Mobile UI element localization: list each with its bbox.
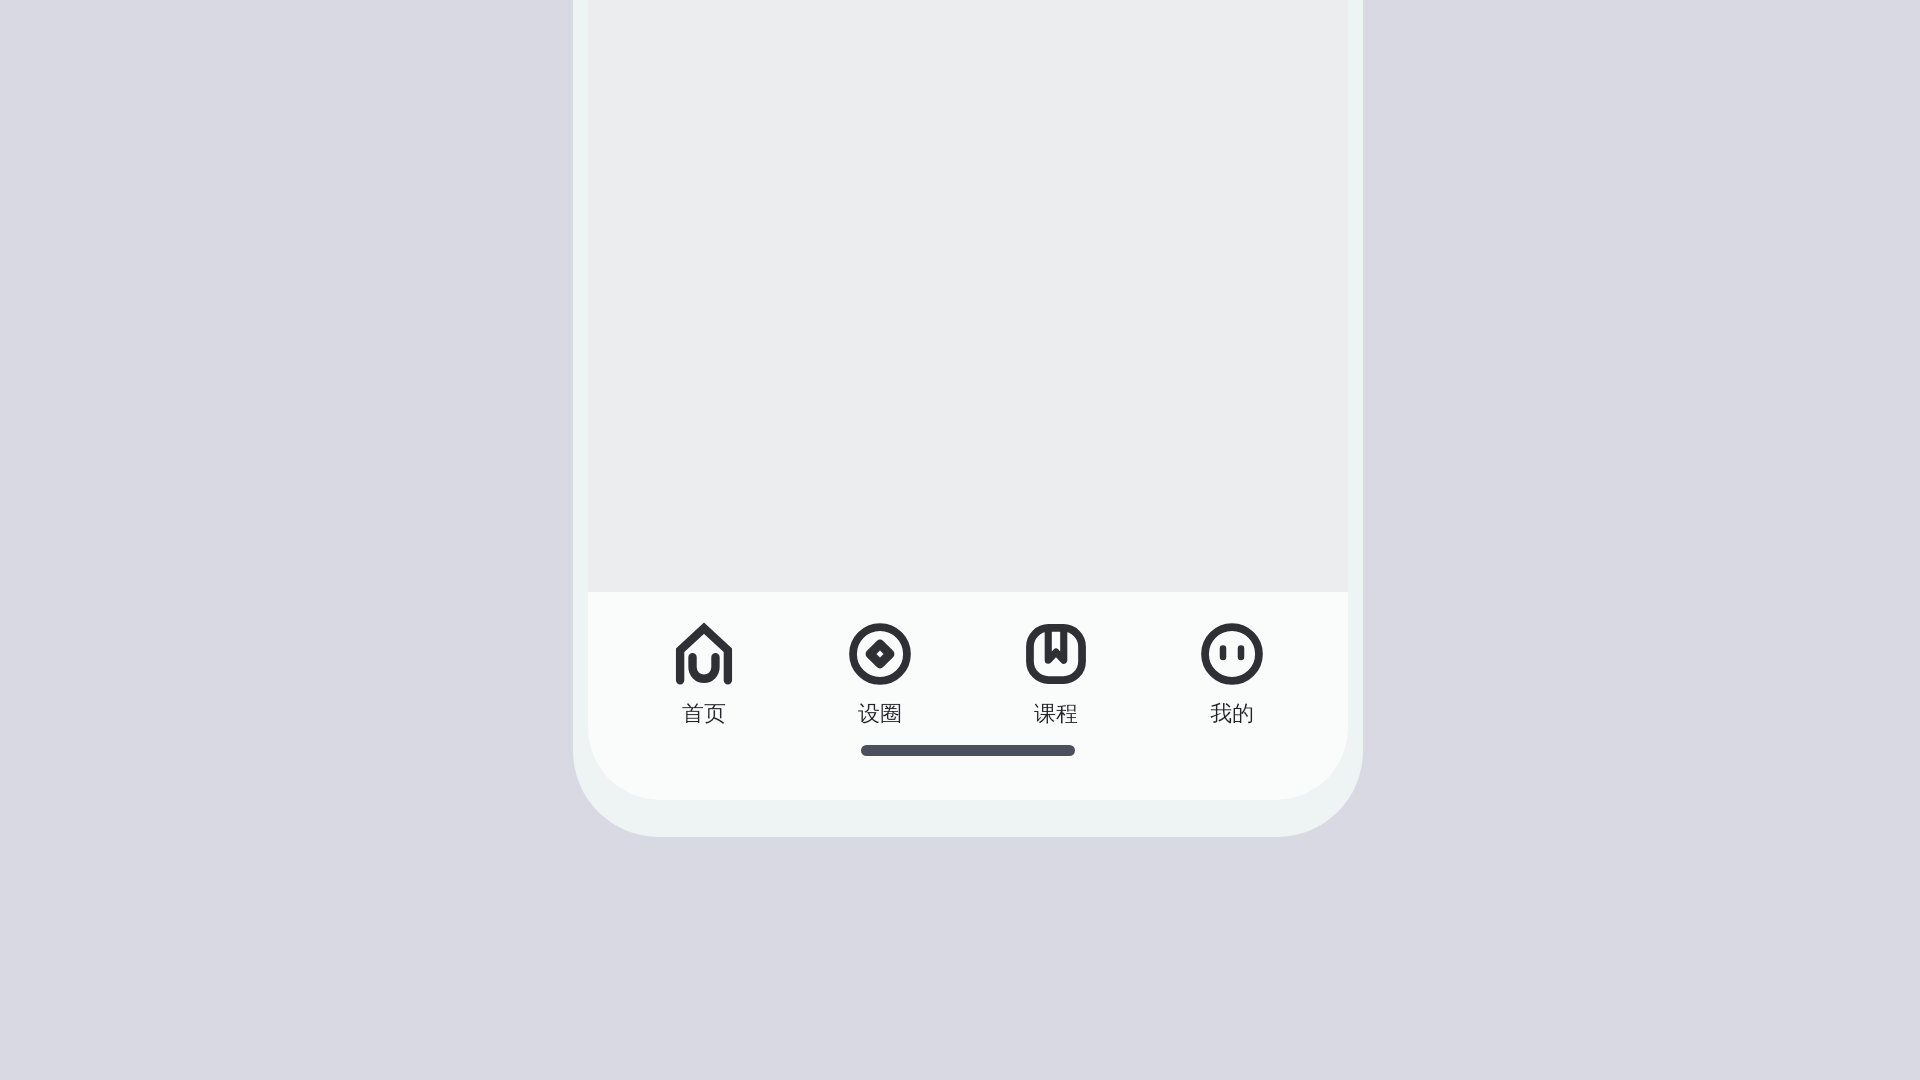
button[interactable]: Courses: [996, 614, 1116, 734]
button[interactable]: Profile: [1172, 614, 1292, 734]
staticText: 课程: [1034, 700, 1078, 728]
button[interactable]: Home: [644, 614, 764, 734]
staticText: 我的: [1210, 700, 1254, 728]
staticText: 首页: [682, 700, 726, 728]
button[interactable]: Design Circle: [820, 614, 940, 734]
staticText: 设圈: [858, 700, 902, 728]
